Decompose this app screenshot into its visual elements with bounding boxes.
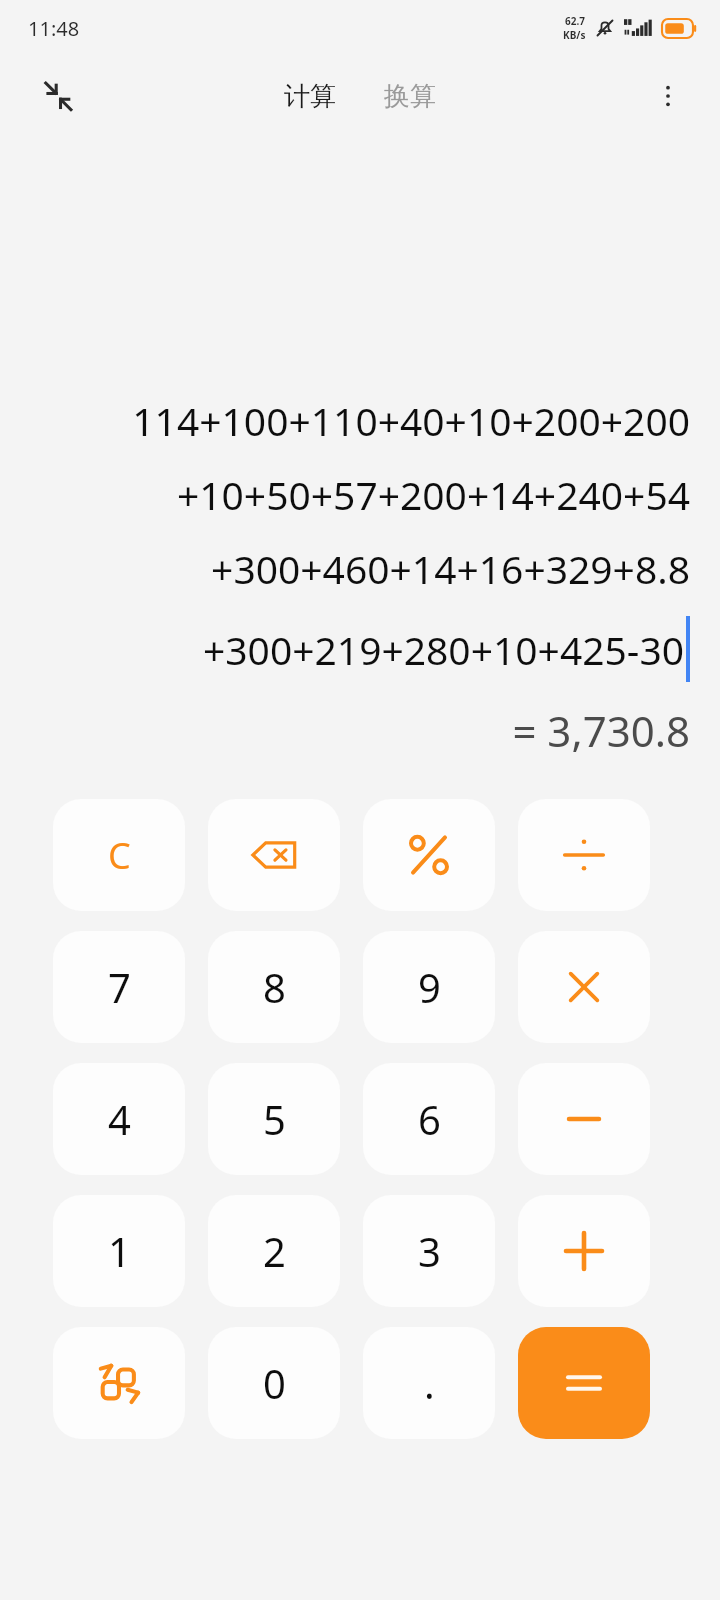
- button[interactable]: 1: [53, 1195, 185, 1307]
- staticText: 1: [108, 1224, 131, 1278]
- staticText: = 3,730.8: [30, 702, 690, 759]
- button[interactable]: Percent: [363, 799, 495, 911]
- staticText: 计算: [284, 80, 336, 113]
- staticText: KB/s: [563, 28, 586, 42]
- staticText: 114+100+110+40+10+200+200: [30, 394, 690, 447]
- button[interactable]: Multiply: [518, 931, 650, 1043]
- button[interactable]: Minus: [518, 1063, 650, 1175]
- staticText: 11:48: [28, 15, 80, 42]
- staticText: C: [108, 831, 131, 880]
- staticText: 5: [263, 1092, 286, 1146]
- staticText: .: [424, 1356, 435, 1410]
- button[interactable]: 6: [363, 1063, 495, 1175]
- button[interactable]: C: [53, 799, 185, 911]
- staticText: 9: [418, 960, 441, 1014]
- button[interactable]: 7: [53, 931, 185, 1043]
- button[interactable]: 换算: [374, 72, 446, 121]
- button[interactable]: .: [363, 1327, 495, 1439]
- button[interactable]: 8: [208, 931, 340, 1043]
- button[interactable]: 2: [208, 1195, 340, 1307]
- staticText: 62.7: [565, 14, 585, 28]
- button[interactable]: 4: [53, 1063, 185, 1175]
- button[interactable]: Divide: [518, 799, 650, 911]
- staticText: 0: [263, 1356, 286, 1410]
- staticText: 6: [418, 1092, 441, 1146]
- staticText: 换算: [384, 80, 436, 113]
- button[interactable]: 0: [208, 1327, 340, 1439]
- button[interactable]: More options: [642, 70, 694, 122]
- staticText: +10+50+57+200+14+240+54: [30, 468, 690, 521]
- staticText: 2: [263, 1224, 286, 1278]
- button[interactable]: Collapse: [32, 70, 84, 122]
- button[interactable]: 3: [363, 1195, 495, 1307]
- staticText: 4: [108, 1092, 131, 1146]
- button[interactable]: 9: [363, 931, 495, 1043]
- button[interactable]: Scientific mode: [53, 1327, 185, 1439]
- button[interactable]: 计算: [274, 72, 346, 121]
- staticText: 7: [108, 960, 131, 1014]
- staticText: +300+460+14+16+329+8.8: [30, 542, 690, 595]
- staticText: 8: [263, 960, 286, 1014]
- staticText: +300+219+280+10+425-30: [202, 623, 684, 676]
- button[interactable]: Equals: [518, 1327, 650, 1439]
- button[interactable]: Plus: [518, 1195, 650, 1307]
- button[interactable]: 5: [208, 1063, 340, 1175]
- button[interactable]: Backspace: [208, 799, 340, 911]
- staticText: 3: [418, 1224, 441, 1278]
